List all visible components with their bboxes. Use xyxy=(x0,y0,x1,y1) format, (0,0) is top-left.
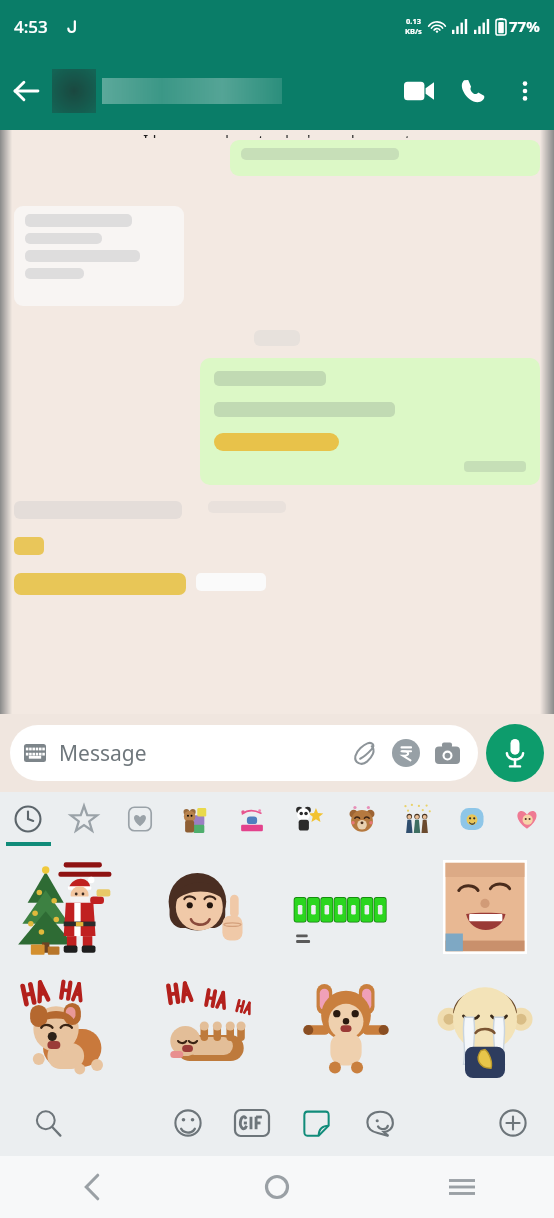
button[interactable]: Pack 6 xyxy=(444,792,499,846)
button[interactable]: Pack 4 xyxy=(334,792,389,846)
button[interactable]: Excited squirrel sticker xyxy=(276,968,415,1090)
button[interactable]: Rolling puppy sticker xyxy=(138,968,276,1090)
button[interactable]: Recent apps xyxy=(369,1156,554,1218)
button[interactable]: Morning sticker xyxy=(276,846,415,968)
button[interactable]: Voice message xyxy=(486,724,544,782)
button[interactable]: Add sticker pack xyxy=(472,1090,554,1156)
button[interactable]: Home xyxy=(184,1156,369,1218)
button[interactable]: Search stickers xyxy=(0,1090,96,1156)
button[interactable]: Favourites xyxy=(112,792,168,846)
button[interactable]: Pack 5 xyxy=(389,792,444,846)
button[interactable]: Back xyxy=(0,65,52,117)
button[interactable]: Crying monkey sticker xyxy=(415,968,554,1090)
staticText: 0.13 xyxy=(406,16,421,26)
button[interactable]: Message xyxy=(10,725,478,781)
button[interactable]: Merry Christmas sticker xyxy=(0,846,138,968)
button[interactable]: Pack 1 xyxy=(168,792,224,846)
button[interactable]: GIF xyxy=(220,1090,284,1156)
button[interactable]: Payment xyxy=(389,736,423,770)
button[interactable]: Back xyxy=(0,1156,184,1218)
button[interactable]: Avatar xyxy=(348,1090,412,1156)
staticText: 77% xyxy=(509,16,540,36)
button[interactable]: Smiling baby sticker xyxy=(415,846,554,968)
staticText: I have send yesterday's work report xyxy=(143,130,411,138)
button[interactable]: Pack 2 xyxy=(224,792,279,846)
button[interactable]: Pack 3 xyxy=(279,792,334,846)
button[interactable]: Video call xyxy=(392,64,446,118)
button[interactable] xyxy=(52,52,392,130)
button[interactable]: More options xyxy=(500,66,550,116)
button[interactable]: Pack 7 xyxy=(499,792,554,846)
button[interactable]: Laughing puppy sticker xyxy=(0,968,138,1090)
button[interactable]: Stickers xyxy=(284,1090,348,1156)
button[interactable]: Attach xyxy=(346,734,384,772)
staticText: 4:53 xyxy=(14,15,48,38)
button[interactable]: Camera xyxy=(430,736,464,770)
staticText: KB/s xyxy=(405,26,422,36)
button[interactable]: Emoji xyxy=(156,1090,220,1156)
button[interactable]: Thumbs up memoji xyxy=(138,846,276,968)
button[interactable]: Voice call xyxy=(446,64,500,118)
button[interactable]: Recent stickers xyxy=(0,792,56,846)
staticText: Message xyxy=(59,739,147,768)
button[interactable]: Starred stickers xyxy=(56,792,112,846)
